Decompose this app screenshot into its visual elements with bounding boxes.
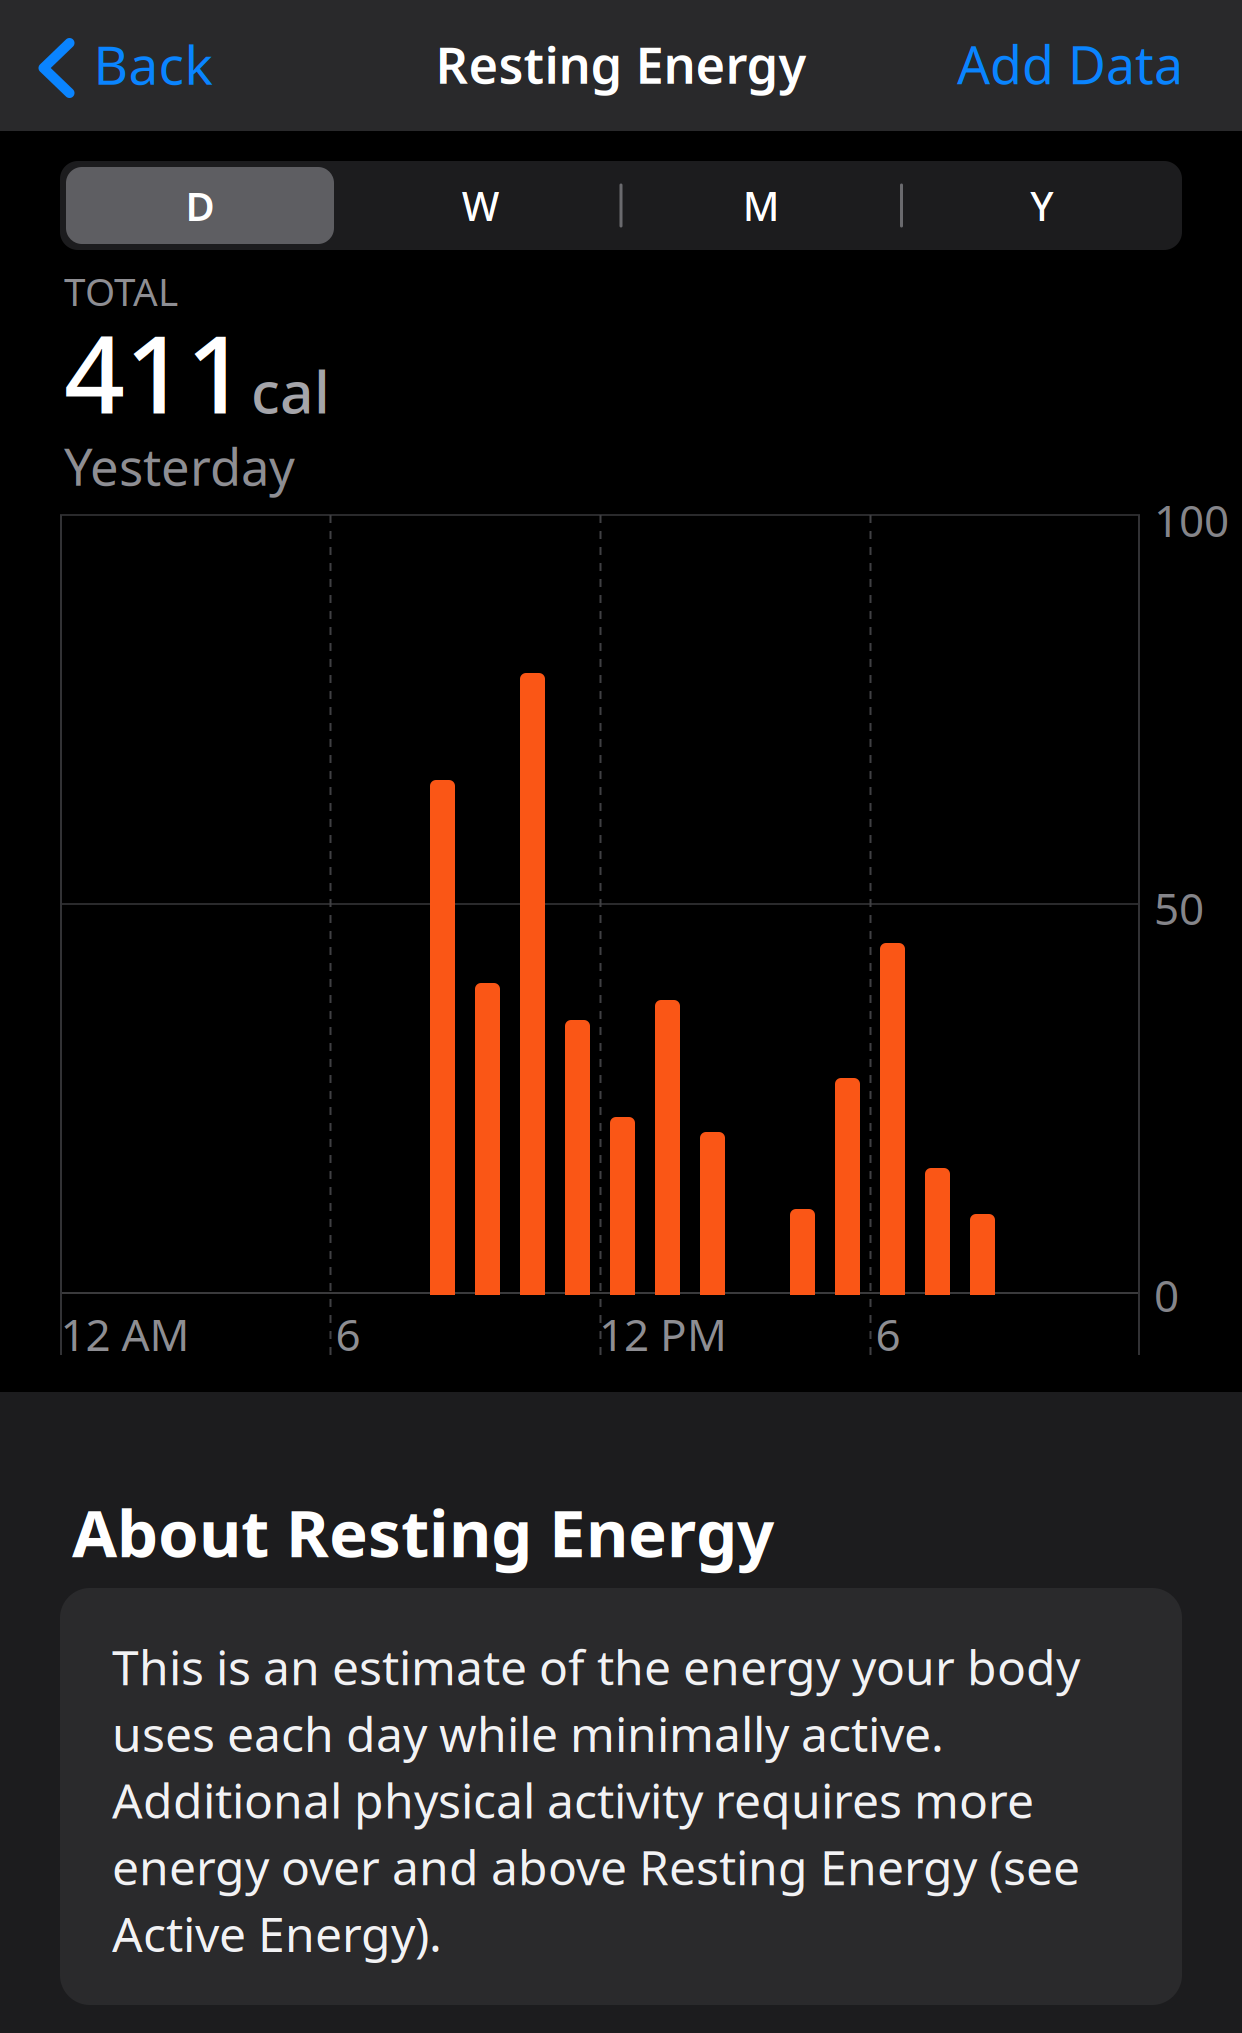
staticText: Yesterday [64, 432, 295, 500]
staticText: M [743, 179, 780, 232]
staticText: 0 [1154, 1266, 1179, 1324]
staticText: Resting Energy [435, 30, 806, 98]
staticText: D [185, 179, 214, 232]
staticText: TOTAL [64, 265, 178, 317]
staticText: 6 [875, 1305, 900, 1363]
staticText: 411 [64, 301, 247, 443]
staticText: 12 PM [599, 1305, 727, 1363]
staticText: Back [93, 29, 212, 99]
staticText: 50 [1154, 879, 1204, 937]
staticText: About Resting Energy [72, 1489, 774, 1575]
button[interactable]: W [347, 167, 615, 244]
staticText: 6 [335, 1305, 360, 1363]
button[interactable]: D [66, 167, 334, 244]
button[interactable]: M [627, 167, 895, 244]
staticText: 12 AM [60, 1305, 189, 1363]
staticText: This is an estimate of the energy your b… [112, 1635, 1080, 1965]
button[interactable]: Y [908, 167, 1176, 244]
button[interactable]: Add Data [957, 29, 1183, 99]
staticText: Y [1030, 179, 1053, 232]
staticText: 100 [1154, 491, 1229, 549]
staticText: cal [251, 352, 330, 430]
staticText: Add Data [957, 29, 1183, 99]
button[interactable]: Back [43, 29, 212, 99]
staticText: W [462, 179, 500, 232]
